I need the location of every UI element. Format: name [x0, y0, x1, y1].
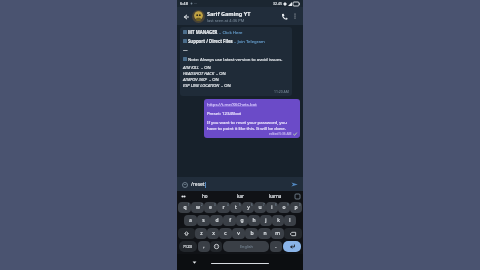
button[interactable]: r [217, 202, 230, 213]
staticText: h [252, 217, 256, 224]
button[interactable]: Back [180, 11, 191, 22]
staticText: last seen at 4:36 PM [207, 18, 245, 23]
button[interactable]: h [248, 215, 260, 226]
button[interactable]: y [242, 202, 254, 213]
button[interactable]: https://t.me/X6Chets.bot [204, 99, 300, 138]
button[interactable]: Call [278, 10, 290, 22]
staticText: e [209, 204, 212, 211]
button[interactable]: Home [211, 263, 269, 264]
staticText: . [275, 243, 277, 250]
button[interactable]: Clipboard [293, 192, 301, 200]
staticText: t [235, 204, 237, 211]
button[interactable]: g [236, 215, 248, 226]
staticText: /reset [191, 181, 205, 188]
staticText: — [183, 47, 188, 53]
staticText: ho [202, 193, 208, 199]
button[interactable]: t [230, 202, 242, 213]
button[interactable]: a [184, 215, 197, 226]
button[interactable]: w [191, 202, 204, 213]
staticText: u [258, 204, 262, 211]
staticText: – Click Here [218, 29, 243, 35]
button[interactable]: kar [223, 191, 258, 201]
staticText: 4 [227, 203, 229, 207]
button[interactable]: e [204, 202, 217, 213]
button[interactable]: s [197, 215, 210, 226]
button[interactable]: v [232, 228, 245, 239]
staticText: 11:20 AM [274, 89, 289, 94]
staticText: p [294, 204, 298, 211]
staticText: , [203, 243, 205, 250]
staticText: y [247, 204, 250, 211]
button[interactable]: c [219, 228, 232, 239]
button[interactable]: Send [289, 179, 300, 190]
staticText: AIMFOV 360° [183, 77, 208, 83]
staticText: Note: Always use latest version to avoid… [188, 56, 283, 62]
staticText: k [277, 217, 280, 224]
staticText: English [240, 244, 253, 249]
button[interactable]: Enter [283, 241, 301, 252]
button[interactable]: z [195, 228, 207, 239]
button[interactable]: l [284, 215, 296, 226]
staticText: z [200, 230, 203, 237]
button[interactable]: Profile photo [192, 10, 205, 23]
staticText: Support / Direct Files [188, 38, 233, 44]
button[interactable]: Hide keyboard [190, 258, 198, 266]
button[interactable]: f [223, 215, 236, 226]
staticText: – ON [220, 83, 231, 89]
staticText: i [271, 204, 273, 211]
staticText: w [196, 204, 200, 211]
staticText: 6 [251, 203, 253, 207]
staticText: q [183, 204, 187, 211]
staticText: d [215, 217, 219, 224]
staticText: – ON [208, 77, 219, 83]
staticText: edited 5:36 AM [269, 132, 292, 136]
button[interactable]: Emoji [180, 180, 189, 189]
button[interactable]: q [178, 202, 191, 213]
button[interactable]: p [290, 202, 302, 213]
button[interactable]: m [271, 228, 284, 239]
button[interactable]: English [223, 241, 269, 252]
staticText: c [224, 230, 227, 237]
staticText: Preset: 12345bot [207, 110, 242, 116]
staticText: ··· [194, 1, 198, 6]
button[interactable]: k [272, 215, 284, 226]
staticText: 8 [275, 203, 277, 207]
button[interactable]: MT MANAGER [180, 27, 292, 96]
staticText: a [189, 217, 192, 224]
staticText: 32.45 [273, 1, 282, 6]
button[interactable]: i [266, 202, 278, 213]
staticText: b [250, 230, 254, 237]
button[interactable]: ?123 [179, 241, 197, 252]
staticText: j [265, 217, 267, 224]
staticText: AIM KILL [183, 65, 200, 71]
button[interactable]: karna [258, 191, 293, 201]
staticText: r [222, 204, 225, 211]
staticText: s [202, 217, 205, 224]
button[interactable]: . [270, 241, 282, 252]
button[interactable]: More options [290, 11, 300, 21]
button[interactable]: j [260, 215, 272, 226]
button[interactable]: n [258, 228, 271, 239]
staticText: 3 [214, 203, 216, 207]
button[interactable]: Backspace [284, 228, 302, 239]
staticText: f [229, 217, 231, 224]
button[interactable]: Emoji keyboard [210, 241, 222, 252]
staticText: o [282, 204, 286, 211]
button[interactable]: o [278, 202, 290, 213]
button[interactable]: d [210, 215, 223, 226]
button[interactable]: x [207, 228, 219, 239]
staticText: https://t.me/X6Chets.bot [207, 101, 257, 107]
staticText: – ON [200, 65, 211, 71]
staticText: n [263, 230, 267, 237]
staticText: karna [269, 193, 282, 199]
button[interactable]: Toolbar [179, 192, 187, 200]
staticText: 1 [188, 203, 190, 207]
staticText: 6:48 [180, 1, 188, 6]
button[interactable]: u [254, 202, 266, 213]
button[interactable]: Shift [178, 228, 195, 239]
button[interactable]: b [245, 228, 258, 239]
button[interactable]: ho [187, 191, 223, 201]
staticText: g [240, 217, 244, 224]
button[interactable]: , [198, 241, 210, 252]
staticText: 5 [239, 203, 241, 207]
